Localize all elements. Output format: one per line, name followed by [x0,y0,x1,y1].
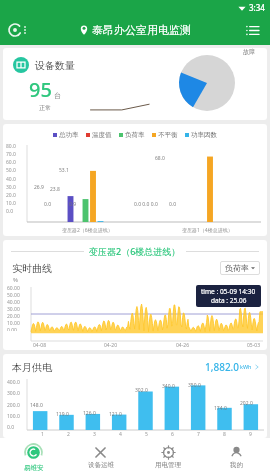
staticText: 30.0 [6,184,16,191]
staticText: 本月供电 [12,361,52,374]
button[interactable]: 用电管理 [134,438,202,476]
staticText: 负荷率 [125,131,145,139]
staticText: 6 [171,431,174,438]
staticText: 20.0 [6,192,16,199]
staticText: 正常 [39,104,51,112]
staticText: 台 [54,91,61,100]
staticText: 40.0 [6,176,16,183]
staticText: 340.0 [162,383,175,390]
staticText: 变压器2（6楼总进线） [62,227,113,234]
staticText: 9 [249,431,252,438]
staticText: 1 [41,431,44,438]
staticText: 100.0 [7,413,20,420]
staticText: 10.00 [7,320,20,327]
staticText: 0.00 [7,327,17,331]
staticText: time : 05-09 14:30 [201,287,256,296]
staticText: 0.0 [169,201,177,208]
button[interactable]: Menu [241,19,263,41]
staticText: 400.0 [7,379,20,386]
staticText: 0.0 [44,201,52,208]
staticText: 负荷率 [225,263,249,273]
staticText: 泰昂办公室用电监测 [92,23,191,37]
staticText: 设备数量 [35,59,75,72]
staticText: 05-03 [247,342,261,349]
staticText: 总功率 [59,131,79,139]
staticText: 23.8 [50,186,60,193]
staticText: 变压器2（6楼总进线） [89,245,181,257]
staticText: 04-08 [33,342,47,349]
button[interactable]: 易维安 [0,438,67,476]
staticText: 53.1 [59,167,69,174]
staticText: 60.00 [7,285,20,292]
staticText: 不平衡 [158,131,178,139]
staticText: 8 [223,431,226,438]
button[interactable]: 本月供电 [3,354,267,374]
staticText: 7 [197,431,200,438]
staticText: 2 [67,431,70,438]
staticText: 3:34 [249,2,265,13]
staticText: 50.0 [6,167,16,174]
staticText: 3 [93,431,96,438]
button[interactable]: 我的 [202,438,270,476]
staticText: 功率因数 [191,131,217,139]
staticText: 302.0 [135,387,148,394]
staticText: 设备运维 [88,461,114,469]
staticText: 0.0 [6,208,14,215]
staticText: 68.0 [155,155,165,162]
staticText: 20.00 [7,313,20,320]
staticText: 202.0 [240,400,253,407]
button[interactable]: App logo [7,22,28,38]
staticText: 我的 [230,461,243,469]
staticText: 174.0 [214,405,227,412]
staticText: 04-26 [176,342,190,349]
staticText: 用电管理 [155,461,181,469]
staticText: 300.0 [7,390,20,397]
staticText: data : 25.06 [211,296,247,305]
staticText: 故障 [243,48,255,56]
staticText: 121.0 [109,411,122,418]
staticText: 温度值 [92,131,112,139]
staticText: 易维安 [24,464,44,472]
staticText: 0.0 0.0 0.0 [134,201,158,208]
staticText: 119.0 [56,411,69,418]
staticText: 60.0 [6,159,16,166]
staticText: 30.00 [7,306,20,313]
staticText: 04-20 [104,342,118,349]
staticText: 40.00 [7,299,20,306]
staticText: 200.0 [7,402,20,409]
staticText: kWh [240,363,252,370]
staticText: 0.0 [7,424,15,431]
staticText: 148.0 [30,402,43,409]
button[interactable]: 设备数量 [3,48,267,120]
staticText: 实时曲线 [12,262,52,275]
staticText: 4 [119,431,122,438]
staticText: % [13,276,18,284]
staticText: 70.0 [6,151,16,158]
button[interactable]: 负荷率 [220,261,260,275]
staticText: 50.00 [7,292,20,299]
staticText: 5 [145,431,148,438]
button[interactable]: 设备运维 [67,438,134,476]
staticText: 95 [29,76,52,103]
staticText: 1,882.0 [205,360,240,374]
staticText: 0.9 [69,201,77,208]
staticText: 26.9 [34,184,44,191]
staticText: 变压器1（4楼总进线） [182,227,233,234]
staticText: 126.0 [83,410,96,417]
staticText: 350.0 [188,382,201,389]
staticText: 80.0 [6,143,16,150]
staticText: 10.0 [6,200,16,207]
